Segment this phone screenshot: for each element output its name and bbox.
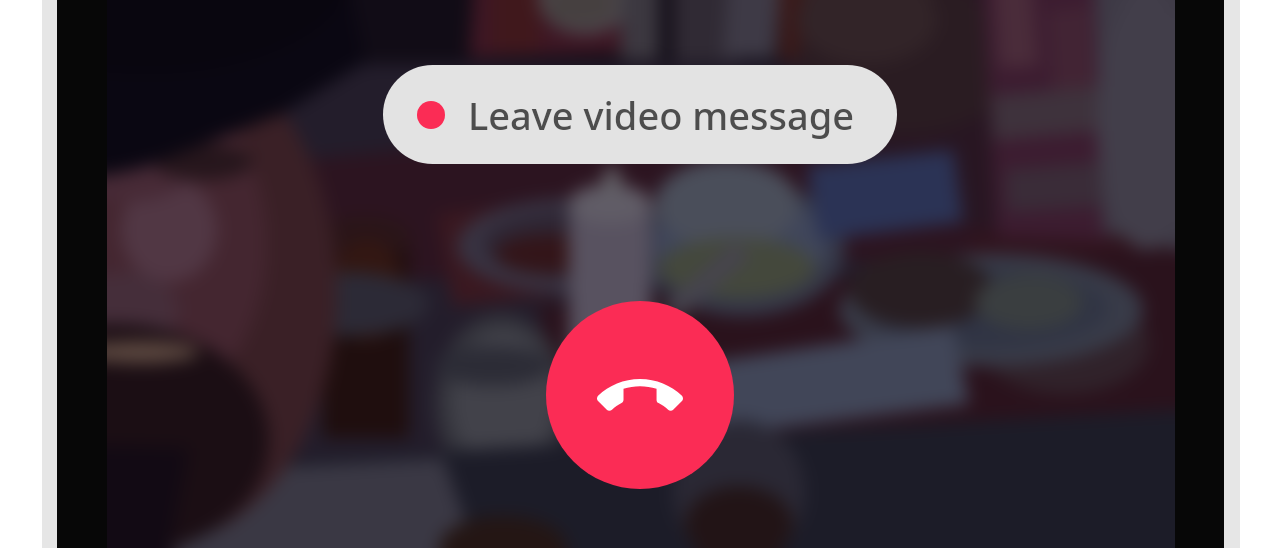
button[interactable]: Leave video message <box>383 65 897 164</box>
staticText: Leave video message <box>468 89 855 141</box>
button[interactable]: End call <box>546 301 734 489</box>
